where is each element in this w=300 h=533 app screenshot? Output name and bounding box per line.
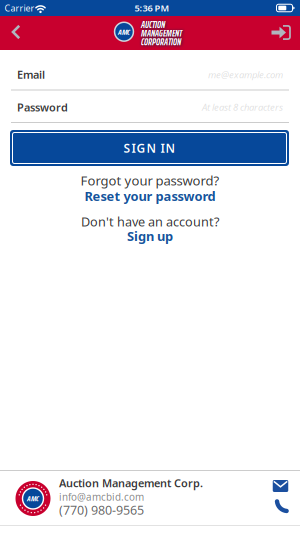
button[interactable] <box>1 15 31 49</box>
staticText: Carrier <box>4 2 34 14</box>
staticText: Reset your password <box>84 187 215 205</box>
staticText: AMC <box>27 492 39 505</box>
staticText: me@example.com <box>208 68 283 81</box>
staticText: AMC <box>118 25 130 38</box>
button[interactable]: Password <box>0 92 300 122</box>
staticText: 5:36 PM <box>134 2 169 14</box>
staticText: AUCTION <box>141 18 165 32</box>
staticText: Email <box>17 67 45 82</box>
staticText: At least 8 characters <box>202 101 283 114</box>
staticText: Auction Management Corp. <box>59 476 203 490</box>
staticText: S I G N I N <box>123 140 175 156</box>
button[interactable] <box>267 20 293 44</box>
button[interactable]: Email <box>0 55 300 93</box>
staticText: Sign up <box>127 227 173 245</box>
staticText: info@amcbid.com <box>59 490 144 504</box>
staticText: Don't have an account? <box>81 213 219 230</box>
button[interactable] <box>271 498 291 514</box>
button[interactable]: Sign up <box>127 227 173 245</box>
staticText: MANAGEMENT <box>141 27 182 40</box>
staticText: Forgot your password? <box>80 172 219 189</box>
staticText: CORPORATION <box>141 35 181 49</box>
button[interactable]: Reset your password <box>84 187 215 205</box>
button[interactable] <box>270 478 290 494</box>
staticText: (770) 980-9565 <box>59 501 144 519</box>
button[interactable]: S I G N I N <box>10 130 289 166</box>
staticText: Password <box>17 100 68 115</box>
